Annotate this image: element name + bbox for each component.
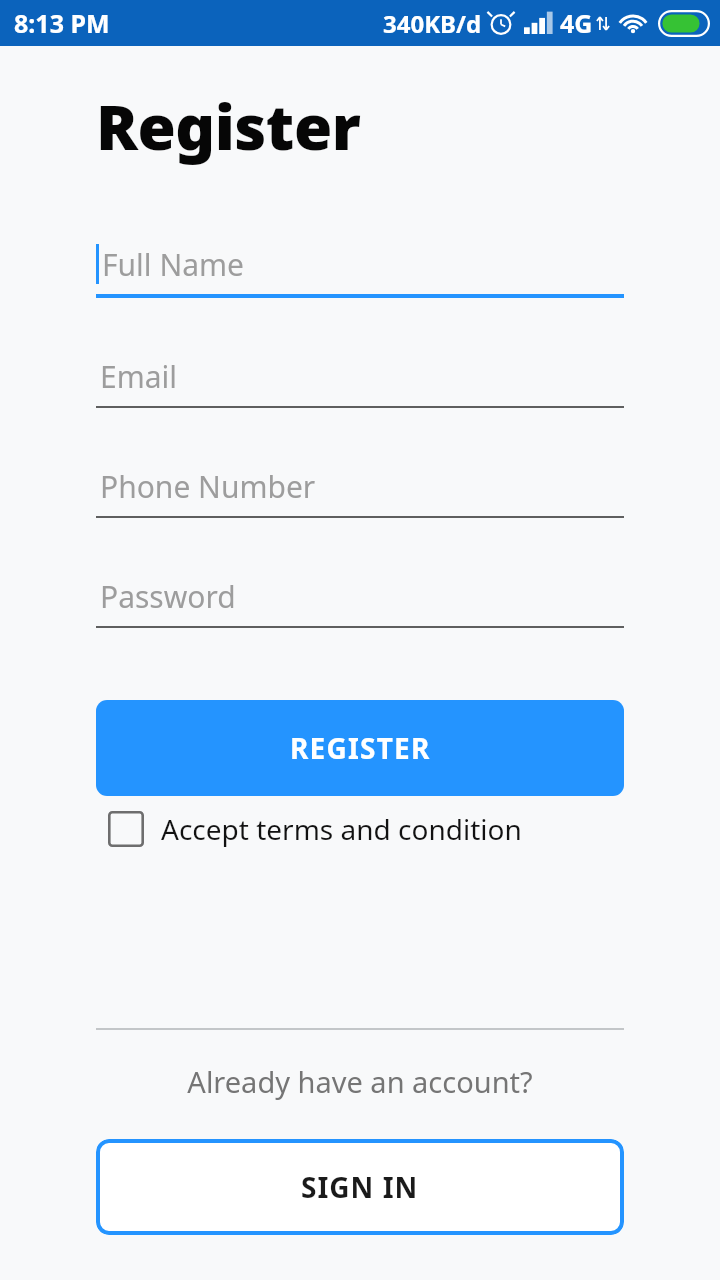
staticText: Already have an account? — [0, 1062, 720, 1101]
staticText: 8:13 PM — [14, 6, 110, 40]
staticText: Email — [100, 356, 178, 397]
staticText: Full Name — [102, 244, 244, 285]
staticText: SIGN IN — [301, 1168, 419, 1206]
button[interactable]: Email — [96, 352, 624, 408]
staticText: Register — [96, 84, 361, 168]
staticText: Accept terms and condition — [161, 810, 522, 848]
staticText: 340KB/d — [383, 7, 482, 40]
button[interactable]: Full Name — [96, 240, 624, 298]
staticText: Password — [100, 576, 236, 617]
button[interactable]: Phone Number — [96, 462, 624, 518]
staticText: Phone Number — [100, 466, 316, 507]
button[interactable]: REGISTER — [96, 700, 624, 796]
button[interactable]: Password — [96, 572, 624, 628]
staticText: 4G — [560, 6, 593, 40]
button[interactable]: SIGN IN — [96, 1139, 624, 1235]
staticText: REGISTER — [290, 729, 431, 767]
button[interactable]: Accept terms and condition — [108, 806, 522, 852]
